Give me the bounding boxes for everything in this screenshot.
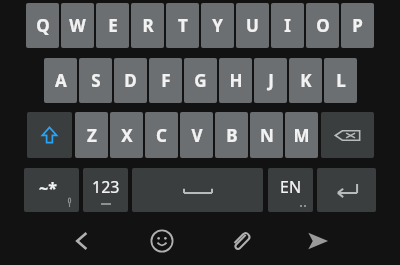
button[interactable]: R [131, 3, 164, 48]
staticText: O [316, 14, 330, 37]
button[interactable]: Enter [317, 168, 376, 212]
staticText: H [229, 69, 243, 92]
staticText: ~* [39, 177, 57, 199]
staticText: N [260, 124, 274, 147]
button[interactable]: K [289, 58, 322, 103]
button[interactable]: I [271, 3, 304, 48]
button[interactable]: P [341, 3, 374, 48]
staticText: B [226, 124, 238, 147]
staticText: R [142, 14, 154, 37]
staticText: Z [87, 124, 97, 147]
button[interactable]: A [44, 58, 77, 103]
staticText: K [300, 69, 312, 92]
staticText: Q [36, 14, 50, 37]
staticText: G [194, 69, 207, 92]
staticText: E [108, 14, 118, 37]
staticText: 123 [92, 176, 120, 198]
staticText: F [161, 69, 171, 92]
button[interactable]: D [114, 58, 147, 103]
staticText: C [156, 124, 167, 147]
button[interactable]: F [149, 58, 182, 103]
staticText: U [246, 14, 259, 37]
button[interactable]: Z [75, 112, 108, 158]
button[interactable]: Shift [27, 112, 72, 158]
button[interactable]: G [184, 58, 217, 103]
button[interactable]: T [166, 3, 199, 48]
button[interactable]: J [254, 58, 287, 103]
button[interactable]: Q [26, 3, 59, 48]
staticText: A [55, 69, 67, 92]
button[interactable]: B [215, 112, 248, 158]
staticText: S [91, 69, 101, 92]
button[interactable]: 123 [83, 168, 128, 212]
staticText: L [336, 69, 346, 92]
button[interactable]: EN [268, 168, 313, 212]
staticText: X [121, 124, 133, 147]
button[interactable]: W [61, 3, 94, 48]
button[interactable]: M [285, 112, 318, 158]
staticText: I [284, 14, 291, 37]
staticText: V [191, 124, 203, 147]
button[interactable]: Backspace [321, 112, 374, 158]
button[interactable]: L [324, 58, 357, 103]
button[interactable]: H [219, 58, 252, 103]
button[interactable]: Attach [218, 219, 262, 263]
staticText: D [124, 69, 137, 92]
button[interactable]: Send [296, 219, 340, 263]
staticText: W [69, 14, 86, 37]
button[interactable]: V [180, 112, 213, 158]
button[interactable]: E [96, 3, 129, 48]
button[interactable]: X [110, 112, 143, 158]
staticText: Y [212, 14, 223, 37]
button[interactable]: Emoji [140, 219, 184, 263]
button[interactable]: C [145, 112, 178, 158]
button[interactable]: Space [132, 168, 263, 212]
staticText: T [178, 14, 188, 37]
button[interactable]: U [236, 3, 269, 48]
button[interactable]: Symbols [24, 168, 79, 212]
button[interactable]: S [79, 58, 112, 103]
staticText: EN [280, 176, 302, 198]
staticText: M [293, 124, 310, 147]
staticText: P [352, 14, 363, 37]
staticText: J [268, 69, 274, 92]
button[interactable]: Back [60, 219, 104, 263]
button[interactable]: Y [201, 3, 234, 48]
button[interactable]: O [306, 3, 339, 48]
button[interactable]: N [250, 112, 283, 158]
